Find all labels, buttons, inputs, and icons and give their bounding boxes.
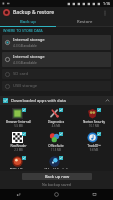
staticText: Internal storage	[13, 37, 45, 43]
button[interactable]: Back up now	[22, 173, 92, 180]
staticText: 4.3 GB available	[13, 61, 37, 65]
staticText: Internal storage	[13, 54, 45, 60]
staticText: SD card	[13, 71, 29, 77]
staticText: WHERE TO STORE DATA	[3, 28, 43, 33]
button[interactable]: Back up	[0, 18, 56, 26]
button[interactable]: Internal storage	[2, 52, 111, 67]
staticText: 2.3 MB	[0, 148, 37, 152]
staticText: Downloaded apps with data	[11, 98, 105, 104]
button[interactable]: Norton Security	[75, 107, 113, 129]
staticText: TV SideView	[0, 168, 37, 169]
staticText: NeoReader	[0, 144, 37, 148]
staticText: Norton Security	[75, 120, 113, 124]
button[interactable]: More options	[100, 8, 110, 18]
staticText: 4.6 MB	[37, 124, 75, 128]
staticText: 10.1 MB	[75, 124, 113, 128]
staticText: Restore	[77, 19, 93, 25]
button[interactable]: NeoReader	[0, 131, 37, 153]
staticText: USB storage	[13, 83, 38, 89]
button[interactable]: Diagnostics	[37, 107, 75, 129]
button[interactable]: OfficeSuite	[37, 131, 75, 153]
button[interactable]: TrackID™	[75, 131, 113, 153]
staticText: OfficeSuite	[37, 144, 75, 148]
button[interactable]: Recent apps	[75, 189, 113, 200]
staticText: TrackID™	[75, 144, 113, 148]
staticText: 11.5 MB	[37, 148, 75, 152]
staticText: Diagnostics	[37, 120, 75, 124]
button[interactable]: Home	[37, 189, 75, 200]
button[interactable]: Internal storage	[2, 35, 111, 50]
button[interactable]: Downloaded apps with data	[0, 96, 113, 105]
button[interactable]: Restore	[56, 18, 113, 26]
staticText: 4.3 GB available	[13, 44, 37, 48]
staticText: 5.5 MB	[0, 124, 37, 128]
button[interactable]: TV SideView	[0, 155, 37, 170]
staticText: 9.8 MB	[75, 148, 113, 152]
staticText: Back up	[20, 19, 36, 25]
button[interactable]: Back	[0, 189, 37, 200]
button[interactable]: Video Unlimited	[37, 155, 75, 170]
button[interactable]: SD card	[2, 69, 111, 79]
staticText: Browser (internal)	[0, 120, 37, 124]
staticText: Video Unlimited	[37, 168, 75, 169]
staticText: Backup & restore	[13, 9, 100, 16]
staticText: No backup saved	[42, 182, 71, 187]
staticText: Back up now	[45, 174, 70, 179]
staticText: 1:16	[103, 1, 111, 6]
button[interactable]: Browser (internal)	[0, 107, 37, 129]
button[interactable]: USB storage	[2, 81, 111, 91]
